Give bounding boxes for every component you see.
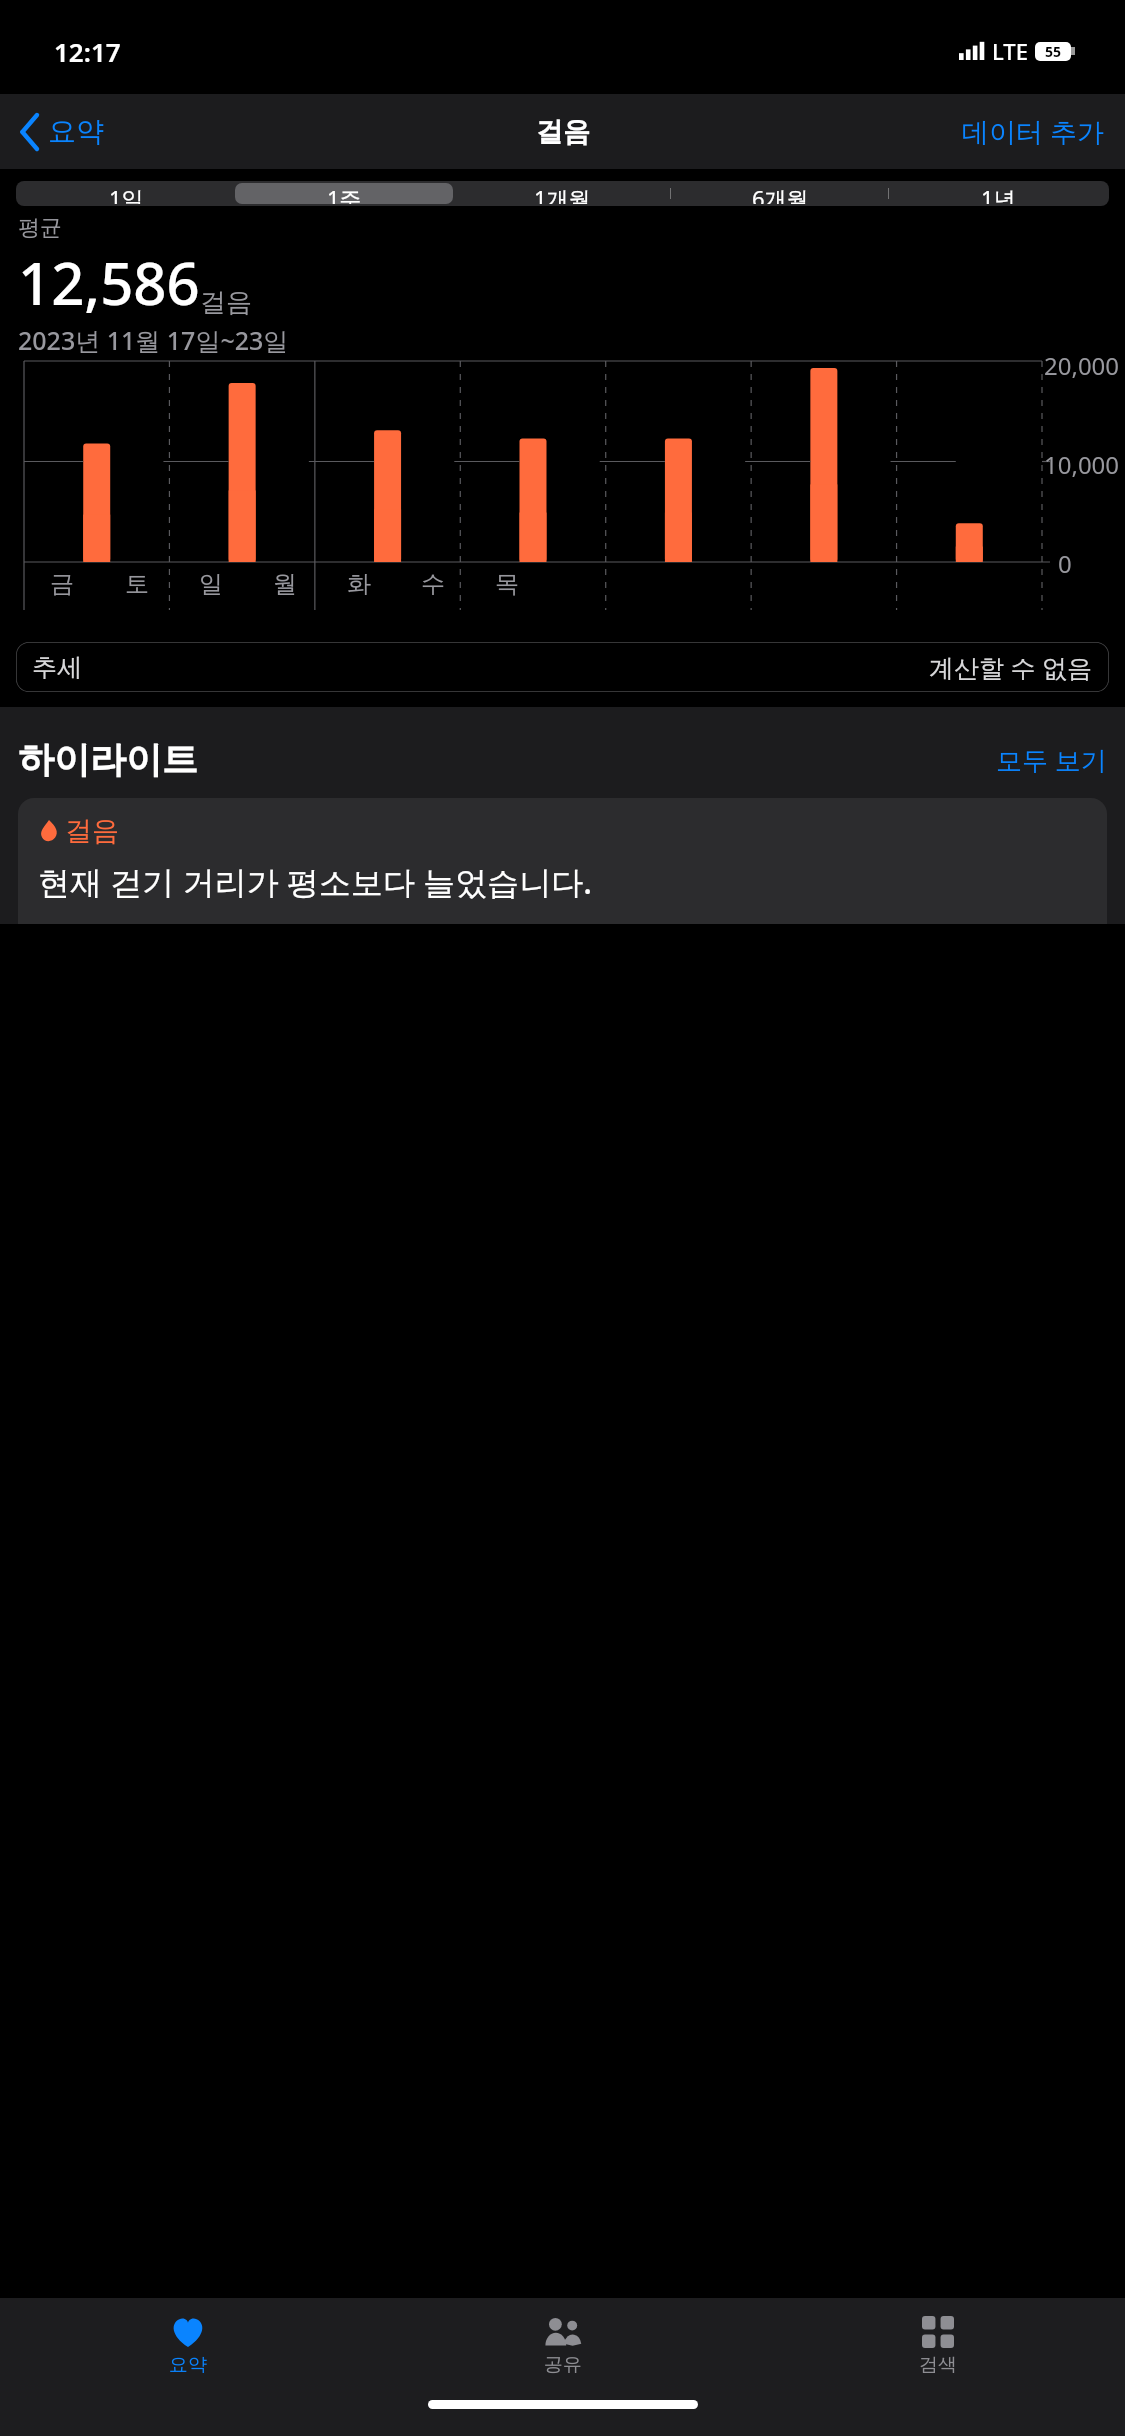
staticText: 1주 bbox=[327, 183, 362, 204]
staticText: 12,586 bbox=[18, 243, 200, 322]
staticText: 요약 bbox=[169, 2353, 207, 2377]
staticText: 화 bbox=[347, 569, 371, 599]
staticText: 20,000 bbox=[1044, 349, 1120, 382]
other: 공유 bbox=[543, 2316, 583, 2348]
button[interactable]: 공유 bbox=[375, 2298, 750, 2394]
staticText: 요약 bbox=[48, 114, 104, 149]
staticText: 걸음 bbox=[536, 115, 590, 149]
staticText: 추세 bbox=[32, 652, 82, 683]
staticText: 2023년 11월 17일~23일 bbox=[18, 323, 289, 357]
staticText: 토 bbox=[125, 569, 149, 599]
button[interactable]: 추세 bbox=[16, 642, 1109, 692]
staticText: 하이라이트 bbox=[18, 737, 198, 782]
button[interactable]: 요약 bbox=[0, 2298, 375, 2394]
button[interactable]: 1주 bbox=[235, 183, 453, 204]
staticText: 평균 bbox=[18, 214, 62, 242]
button[interactable]: 검색 bbox=[750, 2298, 1125, 2394]
button[interactable]: 6개월 bbox=[671, 183, 889, 204]
staticText: 12:17 bbox=[54, 34, 121, 69]
staticText: 55 bbox=[1045, 42, 1062, 61]
staticText: 목 bbox=[495, 569, 519, 599]
staticText: 금 bbox=[50, 569, 74, 599]
staticText: 걸음 bbox=[200, 286, 252, 319]
staticText: 1년 bbox=[981, 183, 1016, 204]
staticText: 6개월 bbox=[752, 183, 809, 204]
staticText: LTE bbox=[992, 36, 1028, 66]
staticText: 현재 걷기 거리가 평소보다 늘었습니다. bbox=[38, 860, 592, 904]
button[interactable]: 걸음 bbox=[18, 798, 1107, 924]
staticText: 검색 bbox=[919, 2353, 957, 2377]
other: 요약 bbox=[170, 2316, 206, 2348]
button[interactable]: 데이터 추가 bbox=[962, 113, 1105, 150]
staticText: 월 bbox=[273, 569, 297, 599]
staticText: 걸음 bbox=[65, 814, 119, 848]
staticText: 0 bbox=[1058, 547, 1072, 580]
staticText: 1개월 bbox=[534, 183, 591, 204]
other: 검색 bbox=[922, 2316, 954, 2348]
button[interactable]: 1일 bbox=[18, 183, 235, 204]
staticText: 계산할 수 없음 bbox=[929, 650, 1093, 684]
staticText: 1일 bbox=[109, 183, 144, 204]
button[interactable]: 1년 bbox=[889, 183, 1107, 204]
button[interactable]: 모두 보기 bbox=[996, 746, 1107, 782]
staticText: 공유 bbox=[544, 2353, 582, 2377]
staticText: 일 bbox=[199, 569, 223, 599]
staticText: 수 bbox=[421, 569, 445, 599]
button[interactable]: 요약 bbox=[20, 114, 104, 149]
button[interactable]: 1개월 bbox=[453, 183, 671, 204]
staticText: 10,000 bbox=[1044, 448, 1120, 481]
